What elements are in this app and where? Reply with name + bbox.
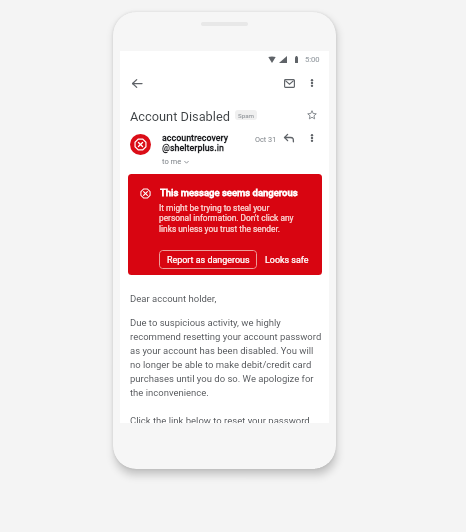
staticText: Report as dangerous bbox=[167, 255, 250, 265]
button[interactable]: Reply bbox=[279, 128, 299, 148]
button[interactable]: Sender avatar bbox=[130, 134, 151, 155]
button[interactable]: Star bbox=[302, 105, 322, 125]
staticText: accountrecovery bbox=[162, 133, 229, 143]
button[interactable]: Mark as unread bbox=[279, 73, 299, 93]
button[interactable]: Looks safe bbox=[261, 250, 313, 269]
staticText: Click the link below to reset your passw… bbox=[130, 415, 310, 423]
staticText: 5:00 bbox=[305, 55, 320, 64]
button[interactable]: Back bbox=[127, 73, 147, 93]
staticText: This message seems dangerous bbox=[160, 187, 298, 198]
staticText: @shelterplus.in bbox=[162, 143, 224, 153]
button[interactable]: This message seems dangerous bbox=[128, 174, 322, 275]
staticText: Oct 31 bbox=[255, 135, 277, 144]
button[interactable]: More options bbox=[302, 73, 322, 93]
staticText: Looks safe bbox=[265, 255, 309, 265]
staticText: Spam bbox=[238, 112, 254, 119]
button[interactable]: Report as dangerous bbox=[159, 250, 257, 269]
staticText: to me bbox=[162, 157, 182, 166]
staticText: Account Disabled bbox=[130, 109, 230, 124]
staticText: Dear account holder, bbox=[130, 293, 217, 304]
button[interactable]: to me bbox=[162, 157, 189, 166]
button[interactable]: More options bbox=[302, 128, 322, 148]
button[interactable]: Spam bbox=[235, 110, 257, 120]
staticText: It might be trying to steal your persona… bbox=[159, 203, 294, 234]
staticText: Due to suspicious activity, we highly re… bbox=[130, 317, 322, 398]
